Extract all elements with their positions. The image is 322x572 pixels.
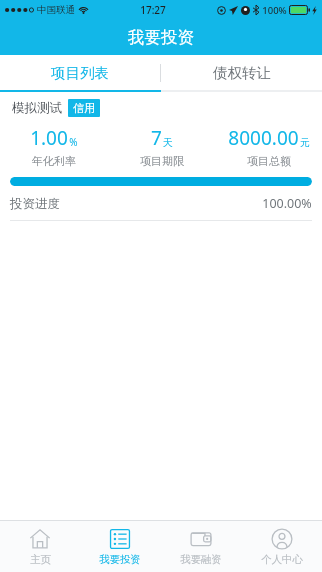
staticText: 项目期限: [140, 154, 184, 168]
staticText: 债权转让: [213, 64, 271, 82]
button[interactable]: 项目列表: [0, 55, 160, 90]
button[interactable]: 模拟测试: [0, 92, 322, 221]
other: 主页: [29, 528, 51, 550]
staticText: 7: [151, 125, 162, 151]
button[interactable]: 我要融资: [160, 521, 241, 572]
staticText: 投资进度: [10, 196, 60, 212]
staticText: 项目总额: [247, 154, 291, 168]
staticText: 年化利率: [32, 154, 76, 168]
staticText: 8000.00: [228, 125, 299, 151]
other: 我要投资: [109, 528, 131, 550]
staticText: 中国联通: [37, 4, 75, 16]
staticText: 我要投资: [128, 27, 194, 48]
other: 我要融资: [190, 528, 212, 550]
staticText: 信用: [73, 101, 95, 115]
button[interactable]: 主页: [0, 521, 80, 572]
staticText: 天: [163, 136, 173, 149]
staticText: 我要融资: [180, 553, 222, 566]
staticText: 模拟测试: [12, 100, 62, 116]
button[interactable]: 债权转让: [161, 55, 322, 90]
staticText: 我要投资: [99, 553, 141, 566]
other: 个人中心: [271, 528, 293, 550]
staticText: 元: [300, 136, 310, 149]
staticText: 项目列表: [51, 64, 109, 82]
button[interactable]: 我要投资: [80, 521, 160, 572]
staticText: 主页: [30, 553, 51, 566]
staticText: 100%: [262, 4, 287, 17]
button[interactable]: 个人中心: [241, 521, 322, 572]
staticText: 个人中心: [261, 553, 303, 566]
staticText: %: [69, 135, 78, 149]
staticText: 17:27: [140, 3, 166, 17]
staticText: 1.00: [30, 125, 68, 151]
staticText: 100.00%: [262, 195, 312, 212]
